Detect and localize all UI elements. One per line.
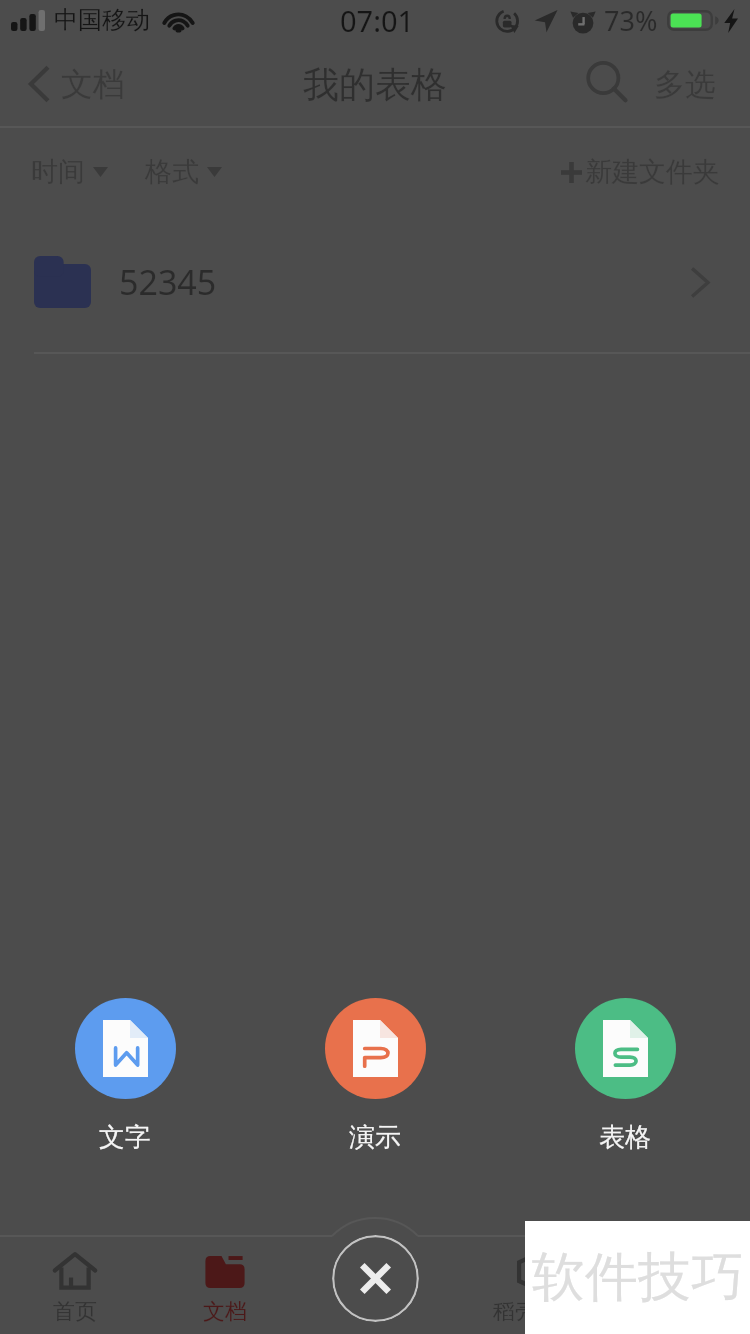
staticText: 我 xyxy=(664,1298,686,1326)
button[interactable]: 格式 xyxy=(141,145,226,199)
button[interactable]: 稻壳 xyxy=(440,1235,590,1326)
staticText: 我的表格 xyxy=(303,62,447,107)
staticText: 52345 xyxy=(119,259,217,305)
button[interactable]: 时间 xyxy=(27,145,112,199)
staticText: 文档 xyxy=(61,64,125,104)
staticText: 格式 xyxy=(145,155,199,189)
button[interactable]: 文档 xyxy=(0,52,143,116)
staticText: 时间 xyxy=(31,155,85,189)
staticText: 表格 xyxy=(599,1121,651,1154)
button[interactable]: 首页 xyxy=(0,1235,150,1326)
staticText: 多选 xyxy=(654,65,716,104)
staticText: 文字 xyxy=(99,1121,151,1154)
staticText: 软件技巧 xyxy=(532,1244,744,1311)
staticText: 07:01 xyxy=(340,1,415,40)
button[interactable]: 文档 xyxy=(150,1235,300,1326)
button[interactable]: 多选 xyxy=(644,49,750,120)
button[interactable]: 演示 xyxy=(275,998,475,1154)
button[interactable]: 我 xyxy=(600,1235,750,1326)
button[interactable]: Close xyxy=(332,1235,419,1322)
staticText: 首页 xyxy=(53,1298,97,1326)
button[interactable]: 文字 xyxy=(25,998,225,1154)
button[interactable]: Search xyxy=(564,44,644,124)
staticText: 新建文件夹 xyxy=(585,155,720,189)
staticText: 演示 xyxy=(349,1121,401,1154)
staticText: 稻壳 xyxy=(493,1298,537,1326)
staticText: 73% xyxy=(604,2,658,39)
button[interactable]: 新建文件夹 xyxy=(545,145,750,199)
button[interactable]: 表格 xyxy=(525,998,725,1154)
button[interactable]: 52345 xyxy=(0,224,750,354)
staticText: 中国移动 xyxy=(54,5,150,35)
staticText: 文档 xyxy=(203,1298,247,1326)
